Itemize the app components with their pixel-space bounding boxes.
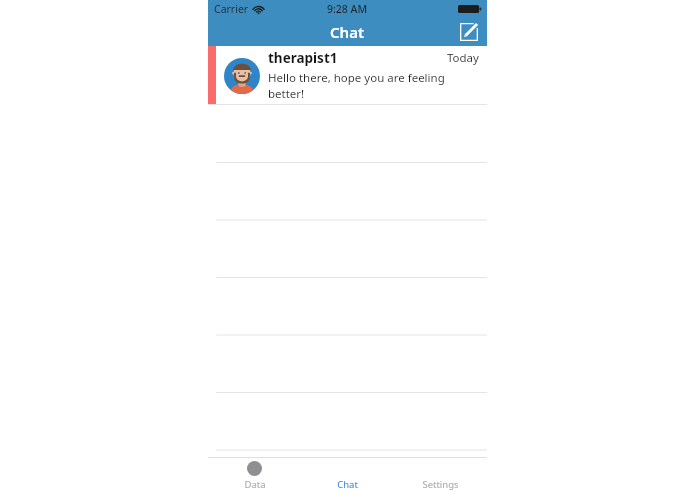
button[interactable]: Chat bbox=[301, 458, 394, 494]
button[interactable]: Data bbox=[208, 458, 301, 494]
staticText: Settings bbox=[422, 478, 459, 491]
staticText: Chat bbox=[330, 22, 365, 42]
button[interactable]: therapist1 bbox=[208, 46, 487, 105]
staticText: Data bbox=[244, 478, 266, 491]
staticText: Chat bbox=[337, 478, 358, 491]
staticText: therapist1 bbox=[268, 49, 338, 67]
staticText: Carrier bbox=[214, 2, 249, 16]
staticText: 9:28 AM bbox=[327, 2, 368, 16]
button[interactable]: Compose new message bbox=[457, 20, 481, 44]
staticText: Hello there, hope you are feeling better… bbox=[268, 70, 479, 102]
button[interactable]: Settings bbox=[394, 458, 487, 494]
staticText: Today bbox=[447, 50, 479, 66]
